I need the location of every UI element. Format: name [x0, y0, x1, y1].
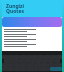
button[interactable] — [4, 34, 62, 37]
button[interactable] — [50, 67, 62, 71]
staticText: Zungizi Quotes — [6, 3, 25, 14]
button[interactable] — [4, 29, 62, 32]
button[interactable] — [4, 44, 62, 47]
button[interactable] — [4, 39, 62, 42]
